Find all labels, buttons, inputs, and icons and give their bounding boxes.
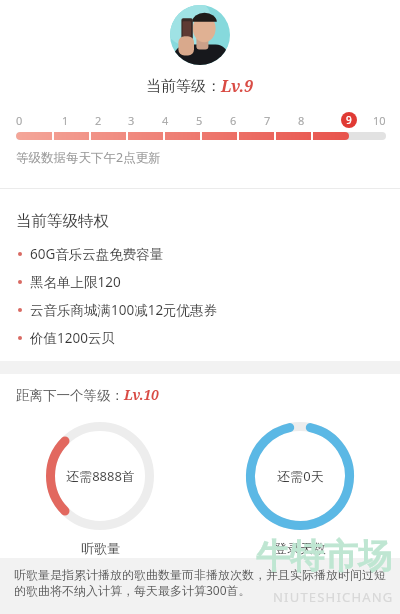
button[interactable]: 价值1200云贝 bbox=[0, 324, 400, 352]
staticText: 等级数据每天下午2点更新 bbox=[16, 149, 161, 166]
staticText: 8 bbox=[298, 113, 305, 128]
staticText: 登录天数 bbox=[274, 540, 326, 556]
staticText: Lv.10 bbox=[124, 386, 159, 404]
staticText: 当前等级： bbox=[146, 77, 221, 96]
button[interactable]: 云音乐商城满100减12元优惠券 bbox=[0, 296, 400, 324]
staticText: 黑名单上限120 bbox=[30, 273, 121, 291]
staticText: NIUTESHICHANG bbox=[273, 588, 394, 606]
staticText: 听歌量是指累计播放的歌曲数量而非播放次数，并且实际播放时间过短 bbox=[14, 567, 386, 582]
staticText: Lv.9 bbox=[221, 75, 254, 97]
staticText: 9 bbox=[346, 113, 352, 127]
button[interactable]: 60G音乐云盘免费容量 bbox=[0, 240, 400, 268]
staticText: 60G音乐云盘免费容量 bbox=[30, 245, 164, 263]
staticText: 2 bbox=[95, 113, 102, 128]
button[interactable]: User avatar bbox=[170, 5, 230, 65]
staticText: 5 bbox=[196, 113, 203, 128]
staticText: 距离下一个等级： bbox=[16, 387, 124, 404]
staticText: 听歌量 bbox=[81, 540, 120, 556]
staticText: 价值1200云贝 bbox=[30, 329, 115, 347]
button[interactable]: 黑名单上限120 bbox=[0, 268, 400, 296]
staticText: 云音乐商城满100减12元优惠券 bbox=[30, 301, 218, 319]
staticText: 3 bbox=[128, 113, 135, 128]
staticText: 当前等级特权 bbox=[16, 211, 109, 231]
button[interactable] bbox=[16, 132, 386, 140]
staticText: 1 bbox=[62, 113, 69, 128]
button[interactable]: 登录天数 bbox=[246, 422, 354, 530]
staticText: 4 bbox=[162, 113, 169, 128]
staticText: 7 bbox=[264, 113, 271, 128]
staticText: 10 bbox=[373, 113, 386, 128]
staticText: 0 bbox=[16, 113, 23, 128]
staticText: 还需0天 bbox=[277, 467, 324, 485]
button[interactable]: 听歌量 bbox=[46, 422, 154, 530]
staticText: 还需8888首 bbox=[66, 467, 135, 485]
staticText: 的歌曲将不纳入计算，每天最多计算300首。 bbox=[14, 582, 251, 598]
staticText: 6 bbox=[230, 113, 237, 128]
staticText: 牛特市场 bbox=[256, 535, 392, 578]
